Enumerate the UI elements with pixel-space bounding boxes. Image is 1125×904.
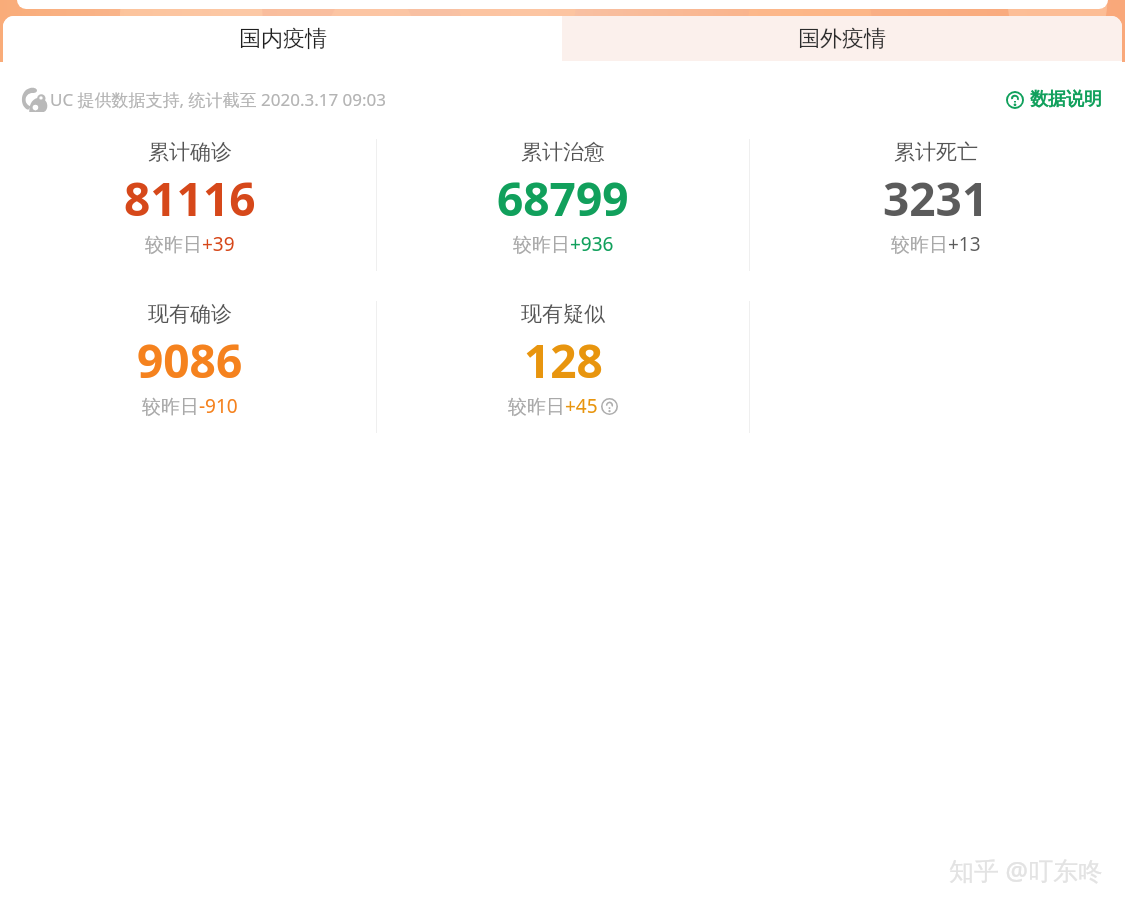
- staticText: 9086: [137, 329, 243, 392]
- staticText: 较昨日+45: [508, 393, 598, 419]
- staticText: 较昨日+39: [145, 231, 235, 257]
- staticText: 现有疑似: [521, 301, 605, 327]
- staticText: 68799: [497, 167, 629, 230]
- button[interactable]: 现有确诊: [137, 301, 243, 433]
- staticText: 累计死亡: [894, 139, 978, 165]
- staticText: 累计治愈: [521, 139, 605, 165]
- other: More info: [601, 398, 618, 415]
- staticText: 国内疫情: [239, 25, 327, 53]
- button[interactable]: 现有疑似: [508, 301, 618, 433]
- staticText: 81116: [124, 167, 256, 230]
- button[interactable]: 累计治愈: [497, 139, 629, 271]
- other: Data description: [1006, 91, 1024, 109]
- other: UC logo: [19, 86, 50, 113]
- staticText: 128: [524, 329, 603, 392]
- staticText: 3231: [883, 167, 989, 230]
- staticText: 国外疫情: [798, 25, 886, 53]
- staticText: 知乎 @叮东咚: [949, 853, 1103, 887]
- button[interactable]: 国外疫情: [562, 16, 1122, 61]
- staticText: 现有确诊: [148, 301, 232, 327]
- button[interactable]: 累计确诊: [124, 139, 256, 271]
- staticText: 较昨日+13: [891, 231, 981, 257]
- staticText: 累计确诊: [148, 139, 232, 165]
- staticText: 数据说明: [1030, 88, 1102, 111]
- button[interactable]: 国内疫情: [3, 16, 562, 61]
- button[interactable]: 累计死亡: [883, 139, 989, 271]
- staticText: 较昨日+936: [513, 231, 614, 257]
- staticText: UC 提供数据支持, 统计截至 2020.3.17 09:03: [50, 88, 387, 111]
- staticText: 较昨日-910: [142, 393, 238, 419]
- button[interactable]: Data description: [1006, 88, 1102, 111]
